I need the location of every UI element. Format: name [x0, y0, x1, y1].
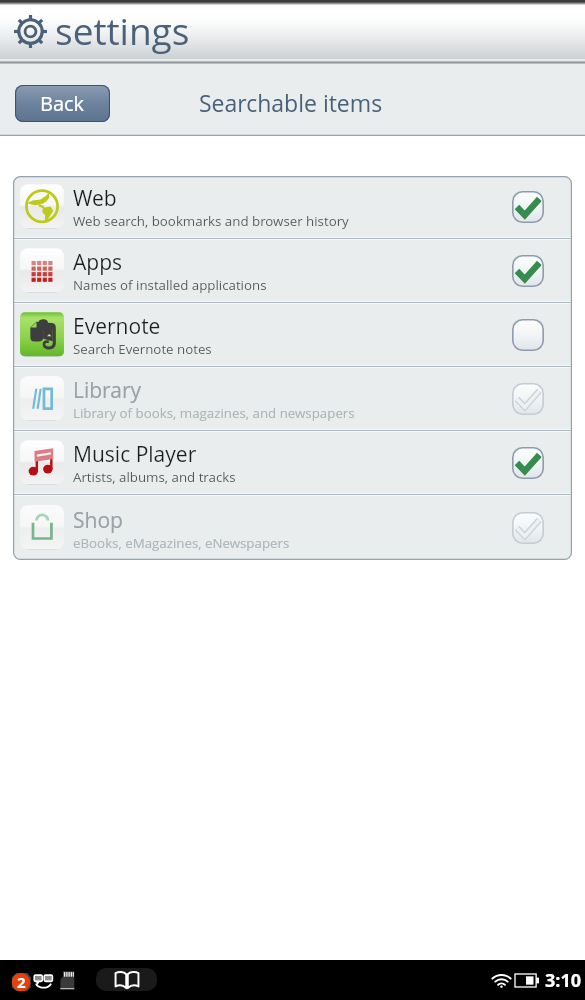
- staticText: Web search, bookmarks and browser histor…: [73, 212, 349, 230]
- staticText: 2: [17, 972, 26, 992]
- button[interactable]: Library: [96, 968, 157, 991]
- button[interactable]: Notifications: 2: [8, 970, 32, 994]
- staticText: Search Evernote notes: [73, 340, 212, 358]
- other: Wi-Fi: [491, 972, 512, 988]
- staticText: Apps: [73, 248, 123, 277]
- staticText: Searchable items: [199, 87, 383, 118]
- button[interactable]: Library: [13, 368, 572, 429]
- button[interactable]: Shop: [13, 496, 572, 560]
- staticText: Library: [73, 376, 142, 405]
- button[interactable]: Evernote: [13, 304, 572, 365]
- button[interactable]: Apps: [13, 240, 572, 301]
- button[interactable]: Apps checkbox: [512, 255, 544, 287]
- staticText: eBooks, eMagazines, eNewspapers: [73, 534, 290, 552]
- staticText: Evernote: [73, 312, 161, 341]
- button[interactable]: Evernote checkbox: [512, 319, 544, 351]
- button[interactable]: Library checkbox: [512, 383, 544, 415]
- other: Battery: [515, 974, 539, 987]
- staticText: Back: [40, 90, 85, 117]
- other: SD card: [58, 970, 75, 991]
- staticText: Artists, albums, and tracks: [73, 468, 236, 486]
- button[interactable]: Back: [15, 85, 110, 122]
- button[interactable]: Music Player: [13, 432, 572, 493]
- staticText: Names of installed applications: [73, 276, 267, 294]
- other: Android: [33, 971, 54, 990]
- button[interactable]: Music Player checkbox: [512, 447, 544, 479]
- button[interactable]: Web checkbox: [512, 191, 544, 223]
- button[interactable]: Shop checkbox: [512, 512, 544, 544]
- staticText: Music Player: [73, 440, 197, 469]
- staticText: Shop: [73, 506, 123, 535]
- staticText: Web: [73, 184, 117, 213]
- button[interactable]: Web: [13, 176, 572, 237]
- staticText: 3:10: [545, 968, 581, 993]
- staticText: Library of books, magazines, and newspap…: [73, 404, 355, 422]
- staticText: settings: [55, 5, 190, 55]
